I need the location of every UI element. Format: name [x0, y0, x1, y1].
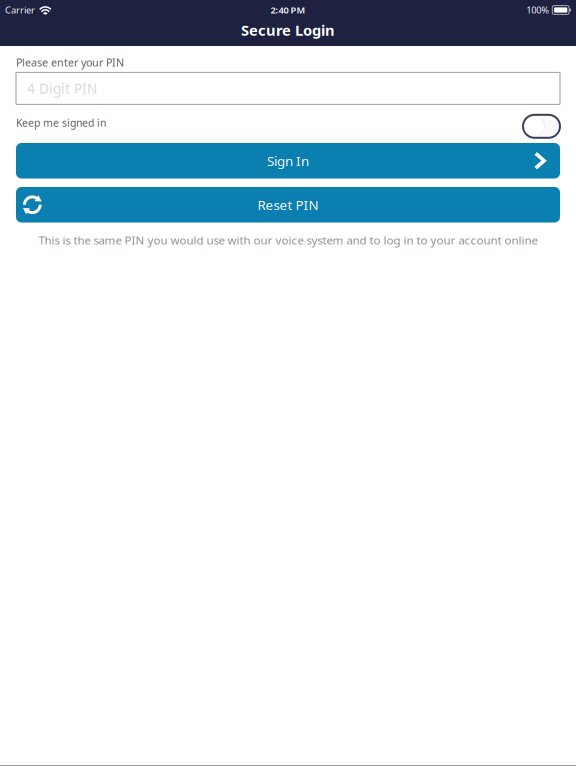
staticText: Secure Login — [241, 20, 335, 40]
staticText: 100% — [526, 4, 549, 16]
button[interactable]: Sign In — [16, 143, 560, 178]
staticText: Please enter your PIN — [16, 55, 124, 69]
button[interactable]: Keep me signed in — [523, 115, 560, 138]
staticText: Carrier — [5, 4, 35, 16]
staticText: 4 Digit PIN — [27, 79, 97, 97]
staticText: Reset PIN — [257, 196, 318, 214]
staticText: Sign In — [267, 152, 309, 170]
button[interactable]: Reset PIN — [16, 187, 560, 222]
staticText: 2:40 PM — [270, 4, 305, 16]
staticText: This is the same PIN you would use with … — [38, 232, 537, 248]
staticText: Keep me signed in — [16, 116, 106, 130]
